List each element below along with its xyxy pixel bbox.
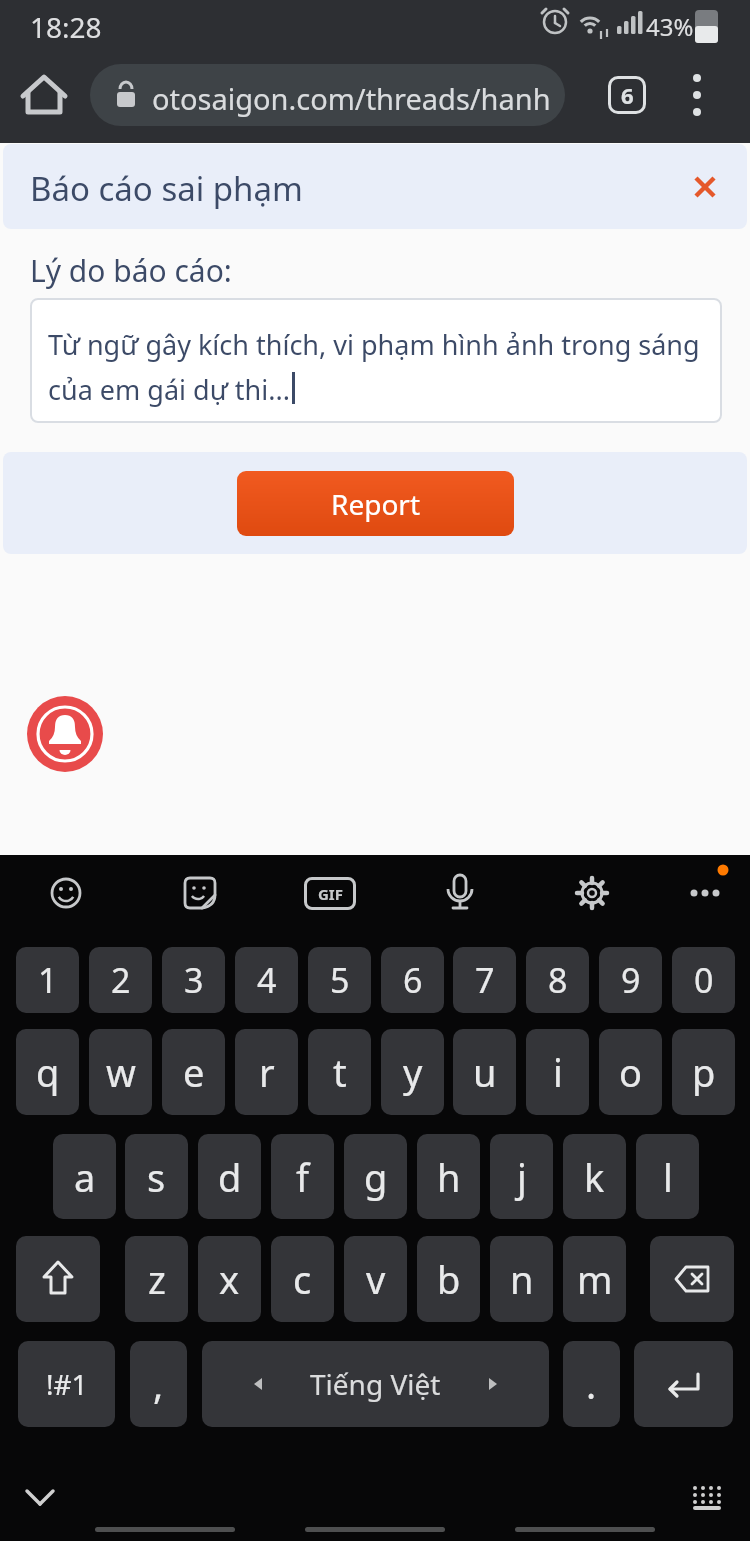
- button[interactable]: [16, 1478, 64, 1518]
- button[interactable]: [650, 1236, 734, 1322]
- button[interactable]: h: [417, 1134, 480, 1219]
- button[interactable]: ,: [130, 1341, 187, 1427]
- button[interactable]: 8: [526, 947, 589, 1013]
- staticText: v: [366, 1253, 386, 1305]
- staticText: 6: [621, 80, 634, 110]
- staticText: j: [517, 1151, 527, 1203]
- staticText: 2: [111, 957, 131, 1003]
- staticText: q: [36, 1046, 60, 1098]
- button[interactable]: y: [381, 1029, 444, 1115]
- button[interactable]: [685, 167, 725, 207]
- button[interactable]: b: [417, 1236, 480, 1322]
- staticText: GIF: [318, 884, 343, 904]
- staticText: 4: [257, 957, 277, 1003]
- button[interactable]: z: [125, 1236, 188, 1322]
- staticText: i: [553, 1046, 563, 1098]
- button[interactable]: 4: [235, 947, 298, 1013]
- staticText: 43%: [646, 10, 694, 43]
- button[interactable]: u: [453, 1029, 516, 1115]
- button[interactable]: n: [490, 1236, 553, 1322]
- button[interactable]: o: [599, 1029, 662, 1115]
- button[interactable]: w: [89, 1029, 152, 1115]
- button[interactable]: otosaigon.com/threads/hanh: [90, 64, 565, 126]
- button[interactable]: k: [563, 1134, 626, 1219]
- staticText: .: [586, 1358, 597, 1410]
- button[interactable]: g: [344, 1134, 407, 1219]
- button[interactable]: d: [198, 1134, 261, 1219]
- button[interactable]: [16, 1236, 100, 1322]
- button[interactable]: [566, 867, 618, 919]
- button[interactable]: Tiếng Việt: [202, 1341, 549, 1427]
- staticText: c: [293, 1253, 312, 1305]
- staticText: f: [296, 1151, 310, 1203]
- button[interactable]: x: [198, 1236, 261, 1322]
- button[interactable]: [686, 1480, 734, 1520]
- button[interactable]: t: [308, 1029, 371, 1115]
- staticText: của em gái dự thi...: [48, 371, 290, 408]
- staticText: k: [584, 1151, 605, 1203]
- staticText: s: [147, 1151, 166, 1203]
- button[interactable]: [679, 860, 739, 920]
- button[interactable]: [174, 867, 226, 919]
- staticText: 18:28: [30, 8, 102, 46]
- staticText: 9: [621, 957, 641, 1003]
- button[interactable]: [40, 867, 92, 919]
- staticText: t: [333, 1046, 347, 1098]
- button[interactable]: GIF: [304, 877, 356, 910]
- button[interactable]: 3: [162, 947, 225, 1013]
- button[interactable]: a: [53, 1134, 116, 1219]
- staticText: h: [437, 1151, 461, 1203]
- button[interactable]: r: [235, 1029, 298, 1115]
- button[interactable]: v: [344, 1236, 407, 1322]
- button[interactable]: s: [125, 1134, 188, 1219]
- button[interactable]: [27, 696, 103, 772]
- button[interactable]: p: [672, 1029, 735, 1115]
- staticText: Từ ngữ gây kích thích, vi phạm hình ảnh …: [48, 326, 700, 363]
- staticText: 1: [38, 957, 58, 1003]
- button[interactable]: 0: [672, 947, 735, 1013]
- staticText: 7: [475, 957, 495, 1003]
- staticText: 0: [694, 957, 714, 1003]
- button[interactable]: 1: [16, 947, 79, 1013]
- staticText: l: [663, 1151, 673, 1203]
- staticText: Tiếng Việt: [310, 1365, 441, 1403]
- button[interactable]: l: [636, 1134, 699, 1219]
- staticText: o: [619, 1046, 642, 1098]
- staticText: y: [403, 1046, 423, 1098]
- button[interactable]: 9: [599, 947, 662, 1013]
- button[interactable]: e: [162, 1029, 225, 1115]
- staticText: ,: [153, 1358, 164, 1410]
- staticText: b: [437, 1253, 461, 1305]
- staticText: 6: [403, 957, 423, 1003]
- button[interactable]: j: [490, 1134, 553, 1219]
- button[interactable]: 6: [381, 947, 444, 1013]
- staticText: z: [148, 1253, 166, 1305]
- button[interactable]: 6: [608, 76, 646, 114]
- staticText: 5: [330, 957, 350, 1003]
- button[interactable]: [683, 67, 711, 123]
- button[interactable]: 2: [89, 947, 152, 1013]
- staticText: w: [106, 1046, 136, 1098]
- button[interactable]: m: [563, 1236, 626, 1322]
- button[interactable]: 7: [453, 947, 516, 1013]
- button[interactable]: [434, 867, 486, 919]
- button[interactable]: !#1: [18, 1341, 115, 1427]
- staticText: r: [259, 1046, 275, 1098]
- staticText: x: [219, 1253, 240, 1305]
- button[interactable]: [634, 1341, 733, 1427]
- staticText: e: [183, 1046, 205, 1098]
- button[interactable]: f: [271, 1134, 334, 1219]
- button[interactable]: .: [563, 1341, 620, 1427]
- staticText: otosaigon.com/threads/hanh: [152, 79, 551, 118]
- staticText: Báo cáo sai phạm: [30, 166, 303, 211]
- button[interactable]: i: [526, 1029, 589, 1115]
- staticText: Report: [331, 485, 421, 523]
- button[interactable]: [20, 70, 68, 120]
- staticText: Lý do báo cáo:: [30, 250, 232, 291]
- staticText: a: [74, 1151, 96, 1203]
- button[interactable]: 5: [308, 947, 371, 1013]
- staticText: !#1: [46, 1365, 88, 1403]
- button[interactable]: c: [271, 1236, 334, 1322]
- button[interactable]: Report: [237, 471, 514, 536]
- button[interactable]: q: [16, 1029, 79, 1115]
